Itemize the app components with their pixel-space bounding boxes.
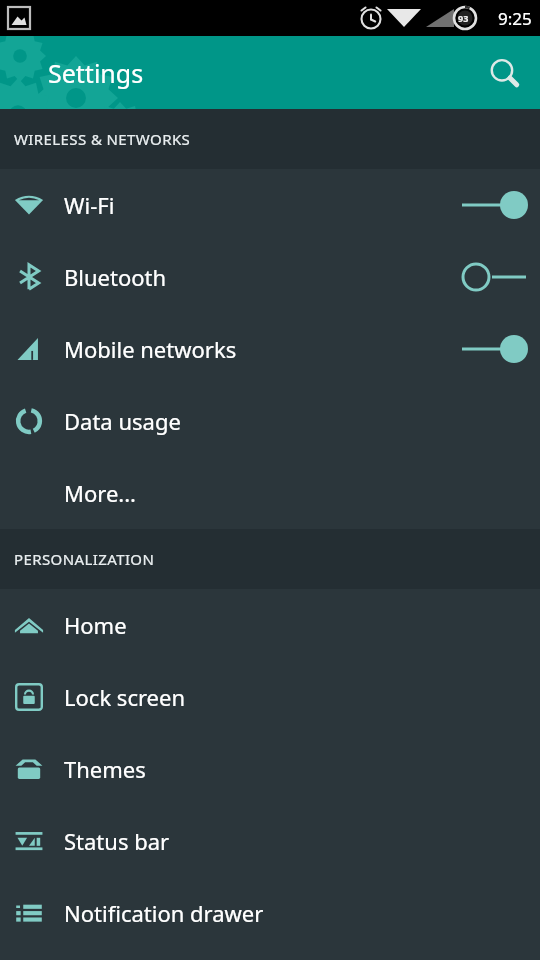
staticText: 9:25 <box>498 7 532 30</box>
staticText: Data usage <box>64 406 524 436</box>
staticText: Wi-Fi <box>64 190 450 220</box>
staticText: Bluetooth <box>64 262 450 292</box>
button[interactable]: Home <box>0 589 540 661</box>
staticText: More... <box>64 478 524 508</box>
button[interactable]: Themes <box>0 733 540 805</box>
button[interactable]: Search <box>476 45 532 101</box>
staticText: Settings <box>48 56 144 90</box>
staticText: PERSONALIZATION <box>14 549 155 569</box>
button[interactable]: Mobile networks on <box>450 313 540 385</box>
staticText: Lock screen <box>64 682 524 712</box>
button[interactable]: Bluetooth <box>0 241 540 313</box>
button[interactable]: Data usage <box>0 385 540 457</box>
button[interactable]: Lock screen <box>0 661 540 733</box>
button[interactable]: Wi-Fi <box>0 169 540 241</box>
staticText: Themes <box>64 754 524 784</box>
button[interactable]: More... <box>0 457 540 529</box>
staticText: Notification drawer <box>64 898 524 928</box>
staticText: WIRELESS & NETWORKS <box>14 129 191 149</box>
button[interactable]: Status bar <box>0 805 540 877</box>
staticText: 93 <box>458 12 469 24</box>
button[interactable]: Notification drawer <box>0 877 540 949</box>
button[interactable]: Wi-Fi on <box>450 169 540 241</box>
staticText: Status bar <box>64 826 524 856</box>
staticText: Mobile networks <box>64 334 450 364</box>
staticText: Home <box>64 610 524 640</box>
button[interactable]: Mobile networks <box>0 313 540 385</box>
button[interactable]: Bluetooth off <box>450 241 540 313</box>
